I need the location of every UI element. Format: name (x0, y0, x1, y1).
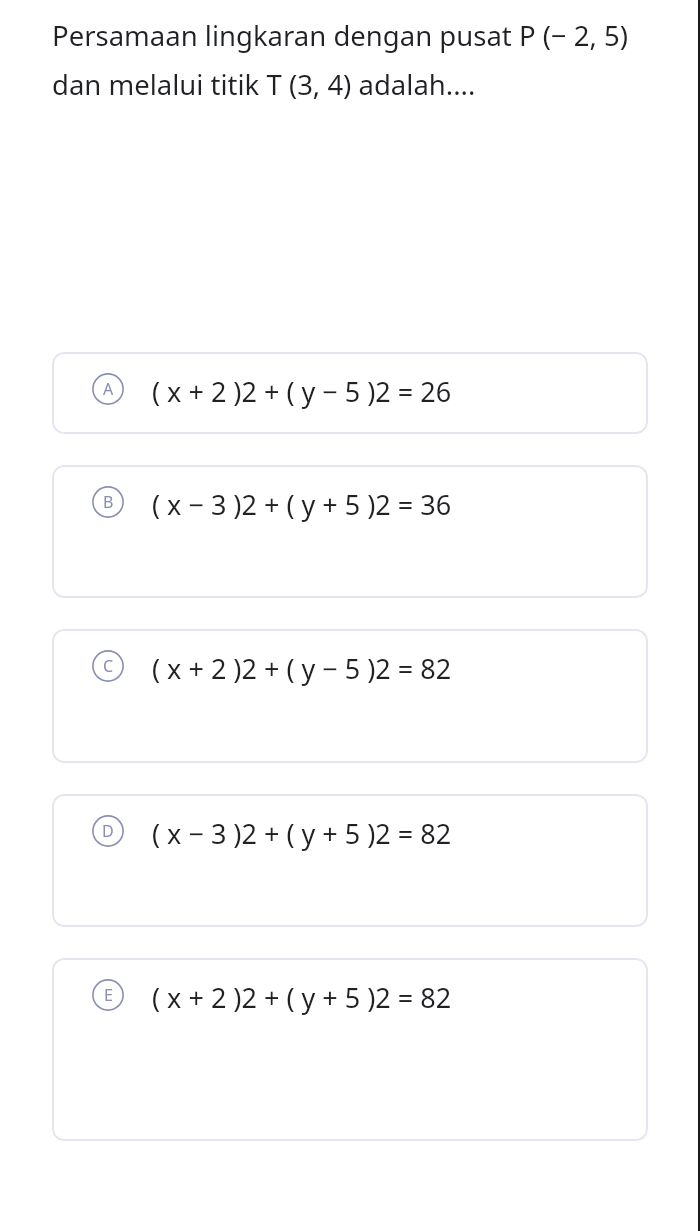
staticText: A (103, 378, 114, 400)
staticText: ( x + 2 )2 + ( y − 5 )2 = 82 (152, 650, 452, 687)
staticText: ( x − 3 )2 + ( y + 5 )2 = 82 (152, 815, 452, 852)
button[interactable]: Option D (52, 794, 648, 927)
button[interactable]: Option C (52, 629, 648, 763)
staticText: C (103, 655, 114, 677)
staticText: ( x + 2 )2 + ( y − 5 )2 = 26 (152, 373, 452, 410)
other: Option A (92, 373, 124, 405)
other: Option B (92, 486, 124, 518)
other: Option C (92, 650, 124, 682)
button[interactable]: Option E (52, 958, 648, 1141)
button[interactable]: Option B (52, 465, 648, 598)
staticText: ( x + 2 )2 + ( y + 5 )2 = 82 (152, 979, 452, 1016)
staticText: ( x − 3 )2 + ( y + 5 )2 = 36 (152, 486, 452, 523)
staticText: D (102, 820, 114, 842)
staticText: E (104, 984, 113, 1006)
other: Option D (92, 815, 124, 847)
staticText: B (103, 491, 114, 513)
other: Option E (92, 979, 124, 1011)
staticText: Persamaan lingkaran dengan pusat P (− 2,… (52, 17, 660, 104)
button[interactable]: Option A (52, 352, 648, 434)
